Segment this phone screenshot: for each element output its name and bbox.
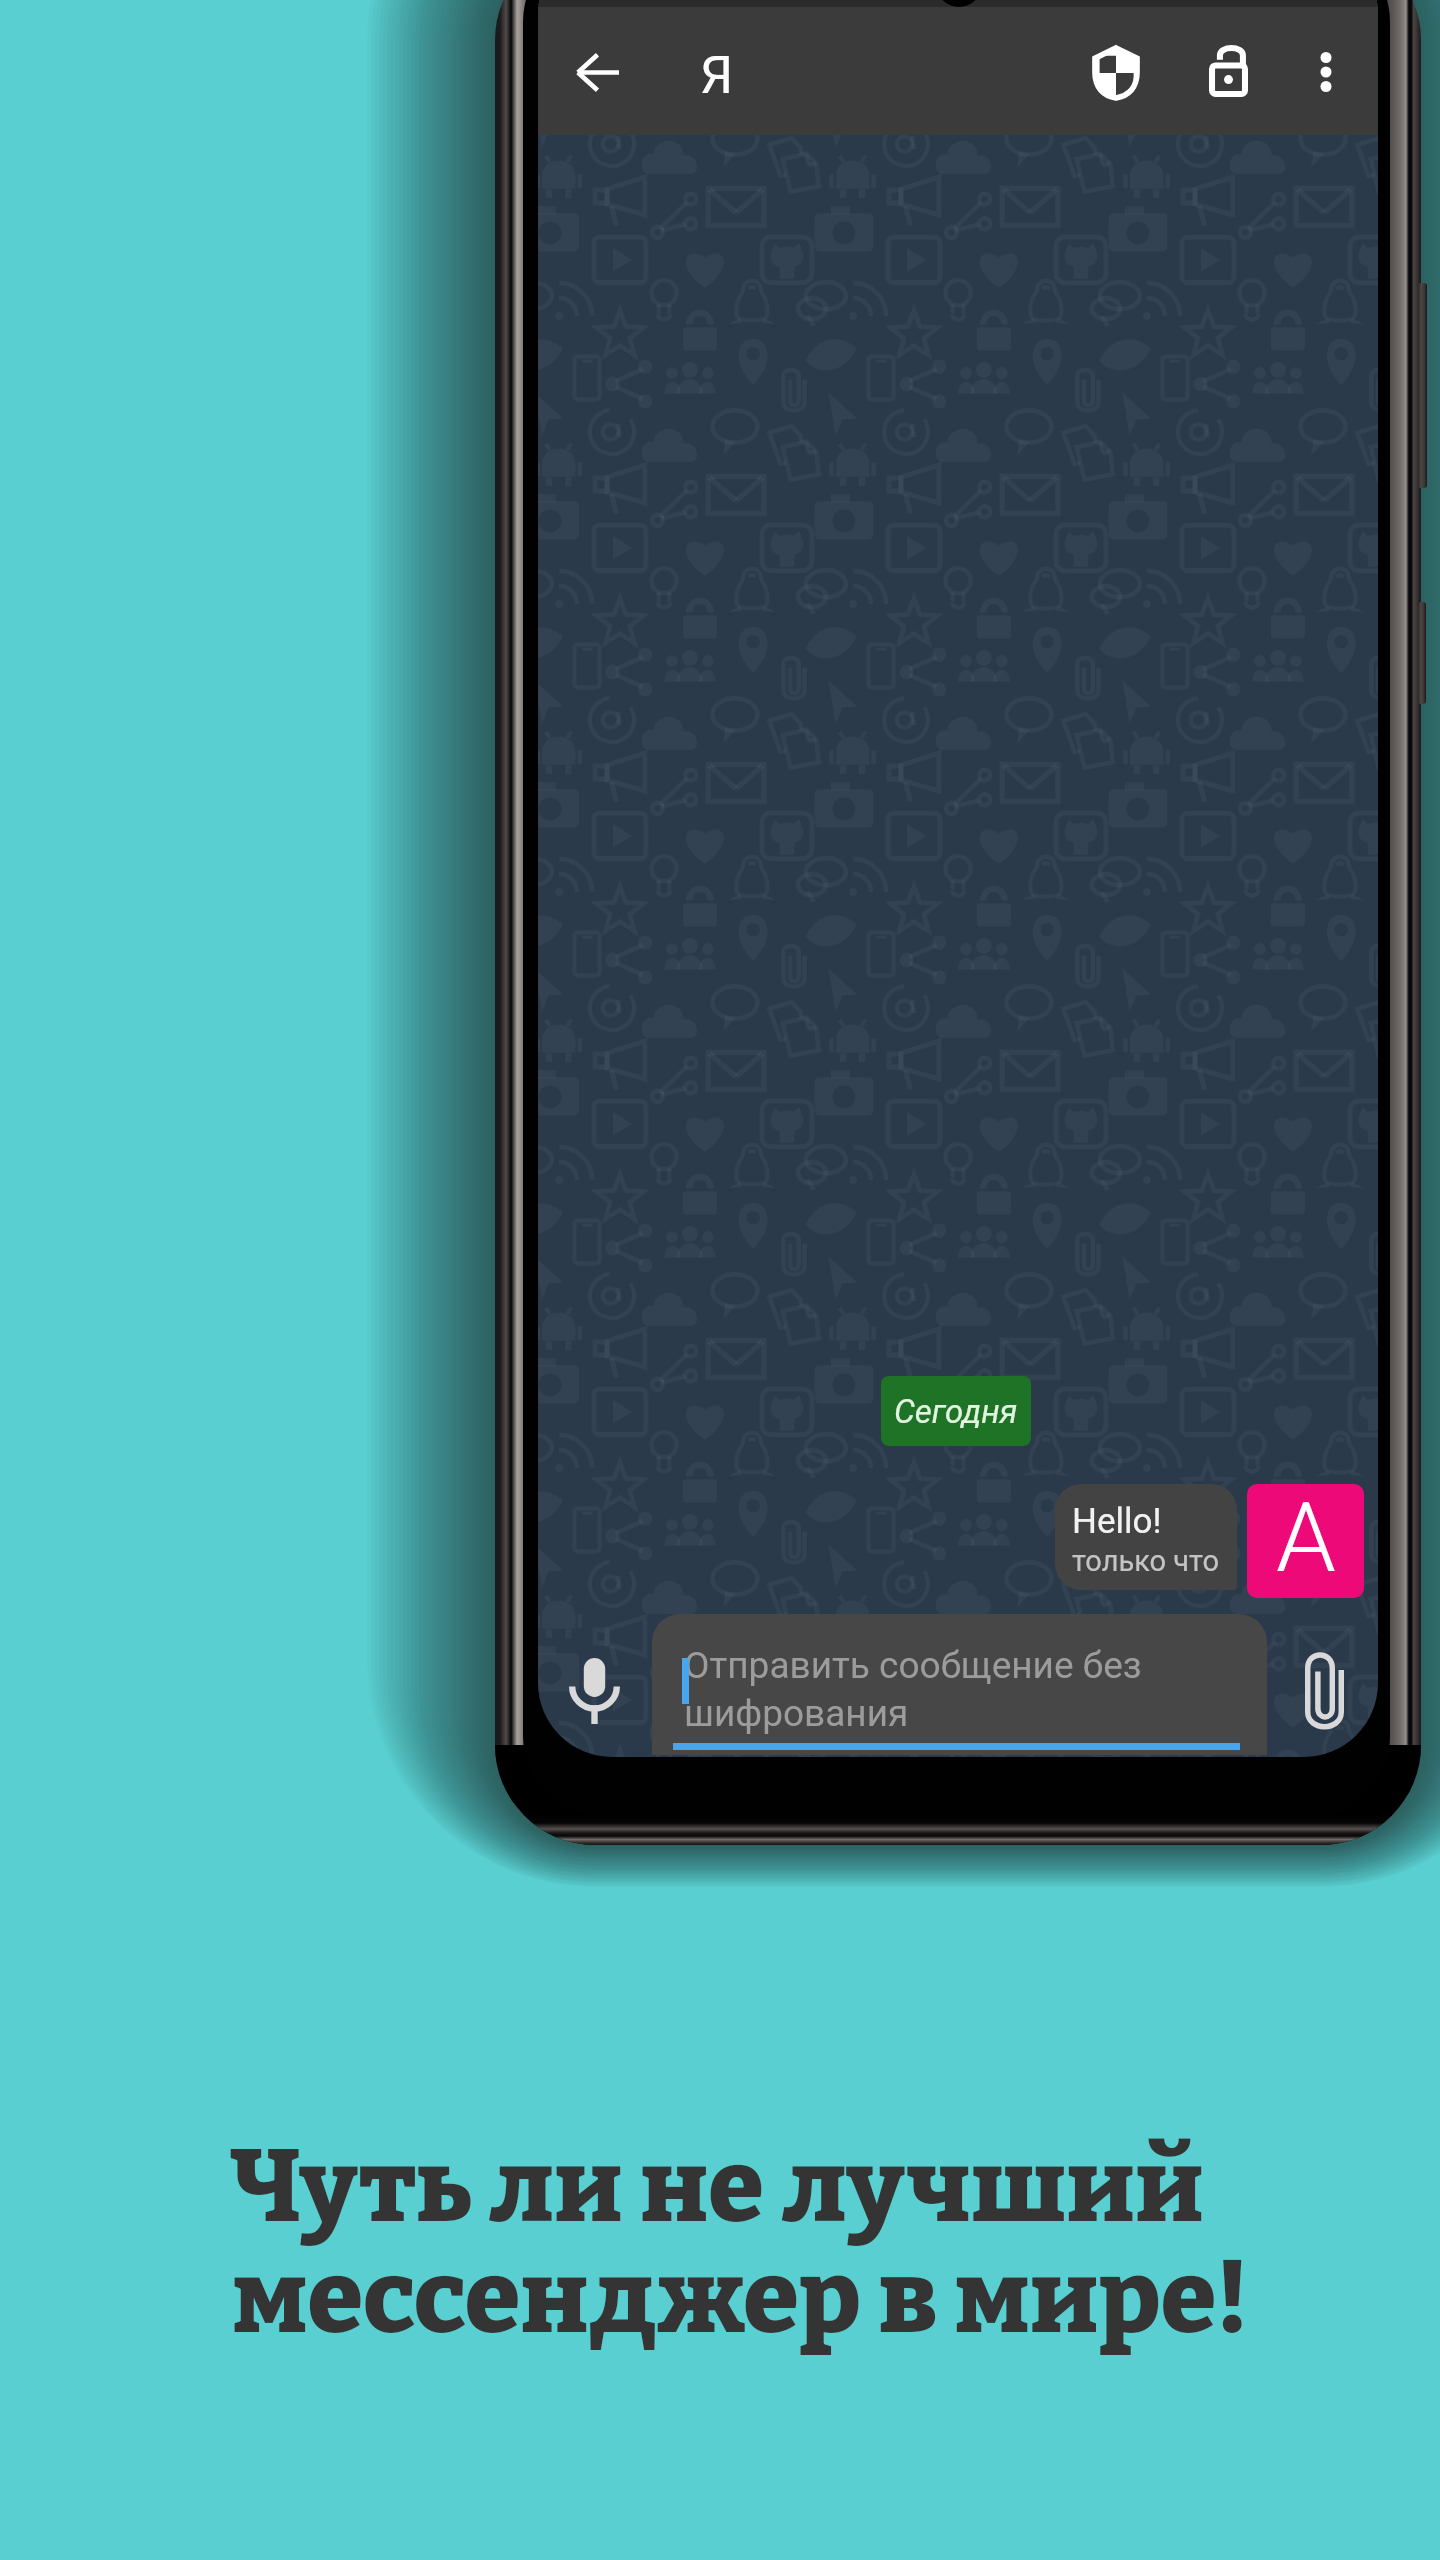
- staticText: только что: [1072, 1544, 1219, 1578]
- staticText: Hello!: [1072, 1501, 1162, 1542]
- staticText: Отправить сообщение без шифрования: [684, 1644, 1142, 1735]
- staticText: A: [1276, 1484, 1336, 1595]
- staticText: мессенджер в мире!: [232, 2238, 1249, 2359]
- button[interactable]: Сегодня: [881, 1376, 1031, 1446]
- button[interactable]: Voice message: [539, 1636, 649, 1746]
- button[interactable]: Attach file: [1269, 1636, 1378, 1746]
- button[interactable]: Security: [1061, 18, 1171, 128]
- staticText: Сегодня: [894, 1392, 1018, 1431]
- staticText: Чуть ли не лучший: [230, 2127, 1204, 2248]
- staticText: Я: [700, 45, 734, 106]
- button[interactable]: Contact avatar A: [1247, 1484, 1364, 1598]
- button[interactable]: Hello!: [1055, 1484, 1237, 1590]
- button[interactable]: Encryption disabled: [1173, 16, 1283, 126]
- button[interactable]: Отправить сообщение без шифрования: [652, 1614, 1267, 1755]
- button[interactable]: Back: [545, 20, 649, 124]
- button[interactable]: More options: [1276, 22, 1376, 122]
